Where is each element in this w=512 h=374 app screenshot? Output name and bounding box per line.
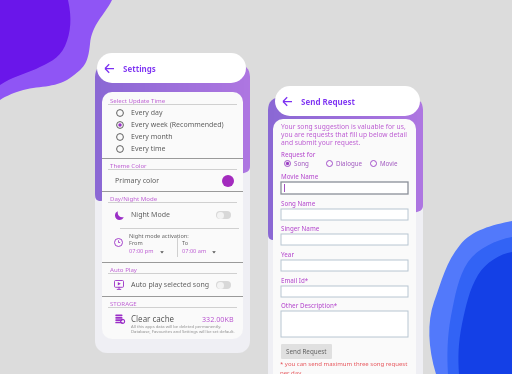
staticText: Movie <box>380 159 398 167</box>
staticText: Primary color <box>115 176 160 186</box>
staticText: Every month <box>131 132 173 142</box>
staticText: From <box>129 239 143 247</box>
button[interactable]: 07:00 pm <box>129 247 154 255</box>
staticText: Auto play selected song <box>131 280 210 290</box>
staticText: Select Update Time <box>110 96 166 104</box>
button[interactable] <box>281 209 408 220</box>
staticText: Database, Favourites and Settings will b… <box>131 329 235 335</box>
staticText: Song Name <box>281 199 316 207</box>
staticText: All this apps data will be deleted perma… <box>131 324 222 330</box>
button[interactable] <box>281 260 408 271</box>
button[interactable]: Back <box>281 95 293 107</box>
staticText: Every day <box>131 108 163 118</box>
button[interactable]: Every day <box>102 107 243 119</box>
staticText: Clear cache <box>131 313 175 324</box>
staticText: Dialogue <box>336 159 363 167</box>
button[interactable]: Night Mode <box>102 204 243 226</box>
staticText: Auto Play <box>110 265 137 273</box>
button[interactable]: Send Request <box>281 344 332 359</box>
button[interactable]: Back <box>97 53 246 83</box>
button[interactable] <box>281 234 408 245</box>
button[interactable]: Primary color <box>102 171 243 190</box>
staticText: Night Mode <box>131 210 170 220</box>
staticText: Settings <box>123 63 156 74</box>
staticText: STORAGE <box>110 299 137 307</box>
button[interactable]: Toggle <box>216 281 231 289</box>
staticText: Every week (Recommended) <box>131 120 224 130</box>
staticText: Request for <box>281 150 316 158</box>
staticText: Send Request <box>286 347 327 356</box>
staticText: Night mode activation: <box>129 232 189 240</box>
button[interactable]: Toggle <box>216 211 231 219</box>
staticText: Every time <box>131 144 166 154</box>
staticText: Movie Name <box>281 172 319 180</box>
staticText: Theme Color <box>110 161 147 169</box>
staticText: Other Description* <box>281 301 338 309</box>
button[interactable]: Dialogue <box>326 159 363 167</box>
staticText: * you can send maximum three song reques… <box>280 360 413 374</box>
staticText: 07:00 pm <box>129 247 154 255</box>
button[interactable]: Movie <box>370 159 398 167</box>
button[interactable] <box>102 311 243 339</box>
button[interactable] <box>281 182 408 194</box>
staticText: 07:00 am <box>182 247 207 255</box>
staticText: Year <box>281 250 295 258</box>
staticText: Day/Night Mode <box>110 194 158 202</box>
button[interactable]: Auto play selected song <box>102 275 243 295</box>
button[interactable]: Back <box>275 86 420 116</box>
button[interactable]: Every time <box>102 143 243 155</box>
button[interactable]: Song <box>284 159 309 167</box>
button[interactable] <box>281 286 408 297</box>
staticText: Send Request <box>301 96 356 107</box>
button[interactable]: 07:00 am <box>182 247 207 255</box>
button[interactable] <box>281 311 408 337</box>
staticText: Song <box>294 159 309 167</box>
staticText: 332.00KB <box>202 314 234 324</box>
staticText: Your song suggestion is valuable for us,… <box>281 122 407 147</box>
button[interactable]: Back <box>103 62 115 74</box>
button[interactable]: Every week (Recommended) <box>102 119 243 131</box>
button[interactable]: Every month <box>102 131 243 143</box>
staticText: To <box>182 239 189 247</box>
staticText: Singer Name <box>281 224 320 232</box>
staticText: Email Id* <box>281 276 309 284</box>
